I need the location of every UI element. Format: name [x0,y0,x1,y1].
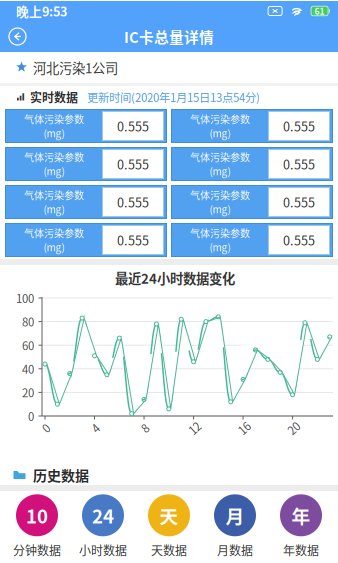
button[interactable]: 气体污染参数 [171,147,333,181]
staticText: 年数据 [283,541,319,559]
staticText: 月数据 [217,541,253,559]
staticText: 气体污染参数 [190,150,250,164]
staticText: 10 [26,502,48,529]
staticText: 河北污染1公司 [33,58,118,77]
staticText: 历史数据 [33,465,89,485]
staticText: 0 [28,408,34,424]
staticText: 小时数据 [79,541,127,559]
button[interactable]: 气体污染参数 [171,185,333,219]
staticText: (mg) [209,126,230,140]
staticText: 0 [43,420,49,436]
staticText: 气体污染参数 [24,226,84,240]
staticText: (mg) [43,164,64,178]
staticText: 实时数据 [30,88,78,106]
staticText: 0.555 [283,193,315,211]
button[interactable]: 气体污染参数 [5,223,167,257]
staticText: 0.555 [283,155,315,173]
button[interactable]: 气体污染参数 [5,109,167,143]
staticText: 更新时间(2020年1月15日13点54分) [87,89,260,105]
staticText: 20 [288,420,300,436]
staticText: 40 [22,361,34,377]
staticText: 12 [189,420,201,436]
staticText: (mg) [43,202,64,216]
staticText: 4 [92,420,98,436]
staticText: (mg) [209,164,230,178]
staticText: 16 [238,420,250,436]
button[interactable]: 10 [4,494,70,559]
staticText: 0.555 [283,117,315,135]
staticText: 气体污染参数 [190,226,250,240]
button[interactable]: 河北污染1公司 [0,52,338,83]
button[interactable]: 气体污染参数 [171,109,333,143]
staticText: 气体污染参数 [24,188,84,202]
staticText: (mg) [43,126,64,140]
staticText: 晚上9:53 [16,2,67,20]
staticText: (mg) [209,240,230,254]
staticText: 61 [315,5,325,17]
button[interactable]: 天 [136,494,202,559]
button[interactable]: 月 [202,494,268,559]
staticText: 年 [291,502,310,529]
button[interactable]: 24 [70,494,136,559]
staticText: 60 [22,337,34,353]
staticText: 气体污染参数 [24,112,84,126]
staticText: IC卡总量详情 [124,26,214,47]
staticText: 月 [225,502,244,529]
staticText: 0.555 [117,117,149,135]
button[interactable]: 年 [268,494,334,559]
staticText: 气体污染参数 [190,112,250,126]
staticText: 100 [16,290,34,306]
staticText: 80 [22,313,34,330]
staticText: 气体污染参数 [24,150,84,164]
button[interactable]: 气体污染参数 [5,185,167,219]
staticText: 天 [159,502,178,529]
staticText: 20 [22,384,34,401]
staticText: (mg) [209,202,230,216]
staticText: 最近24小时数据变化 [115,268,235,288]
staticText: 0.555 [117,231,149,249]
staticText: 分钟数据 [13,541,61,559]
staticText: 天数据 [151,541,187,559]
staticText: 0.555 [117,193,149,211]
staticText: 8 [142,420,148,436]
staticText: 气体污染参数 [190,188,250,202]
staticText: 0.555 [117,155,149,173]
button[interactable]: 气体污染参数 [171,223,333,257]
button[interactable]: 返回 [0,21,35,52]
staticText: 24 [92,502,114,529]
staticText: 0.555 [283,231,315,249]
staticText: (mg) [43,240,64,254]
button[interactable]: 气体污染参数 [5,147,167,181]
